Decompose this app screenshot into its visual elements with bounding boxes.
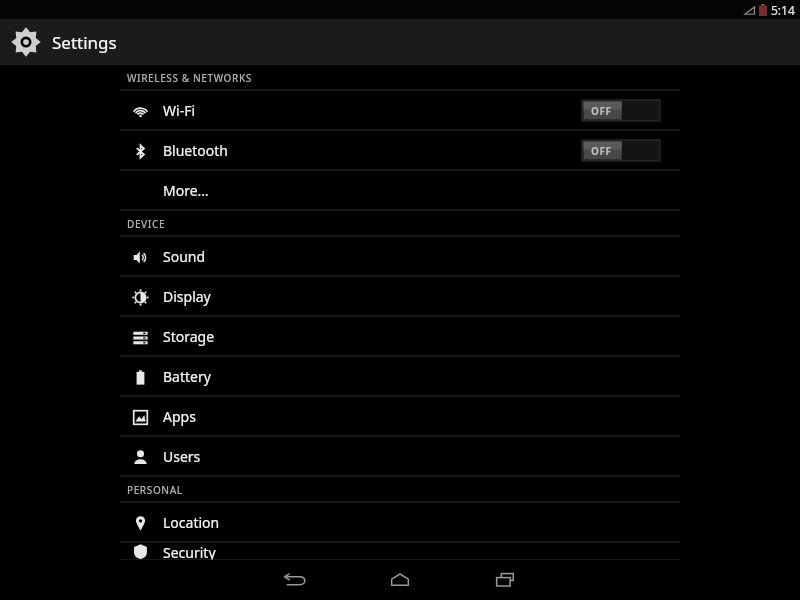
staticText: Bluetooth [163, 141, 228, 160]
button[interactable]: Battery [120, 357, 680, 396]
button[interactable]: Toggle off [582, 140, 660, 161]
staticText: OFF [591, 104, 612, 118]
staticText: Display [163, 287, 211, 306]
staticText: Wi-Fi [163, 101, 196, 120]
button[interactable]: Apps [120, 397, 680, 436]
button[interactable]: More… [120, 171, 680, 210]
button[interactable]: Toggle off [582, 100, 660, 121]
staticText: PERSONAL [127, 483, 183, 497]
staticText: Settings [52, 31, 117, 54]
button[interactable]: Bluetooth [120, 131, 680, 170]
staticText: OFF [591, 144, 612, 158]
staticText: Location [163, 513, 220, 532]
staticText: Storage [163, 327, 215, 346]
button[interactable]: Storage [120, 317, 680, 356]
staticText: 5:14 [771, 2, 795, 18]
staticText: Battery [163, 367, 211, 386]
button[interactable]: Users [120, 437, 680, 476]
button[interactable]: Location [120, 503, 680, 542]
button[interactable]: Settings [0, 19, 800, 65]
staticText: Sound [163, 247, 206, 266]
button[interactable]: Recent apps [485, 562, 527, 598]
staticText: Security [163, 543, 216, 560]
button[interactable]: Home [379, 562, 421, 598]
button[interactable]: Security [120, 543, 680, 560]
staticText: DEVICE [127, 217, 166, 231]
staticText: Users [163, 447, 201, 466]
staticText: Apps [163, 407, 196, 426]
button[interactable]: Sound [120, 237, 680, 276]
button[interactable]: Display [120, 277, 680, 316]
staticText: WIRELESS & NETWORKS [127, 71, 252, 85]
button[interactable]: Back [273, 562, 315, 598]
staticText: More… [163, 181, 209, 200]
button[interactable]: Wi-Fi [120, 91, 680, 130]
